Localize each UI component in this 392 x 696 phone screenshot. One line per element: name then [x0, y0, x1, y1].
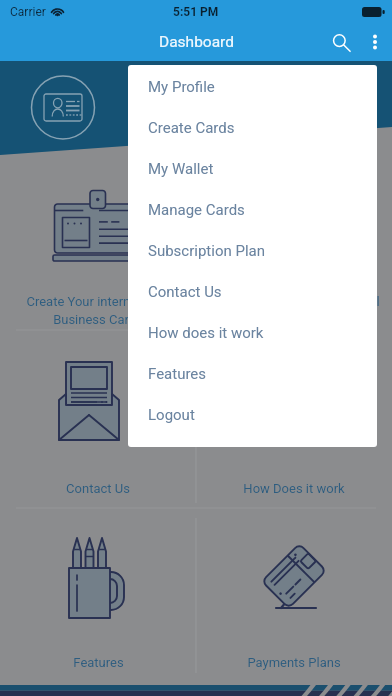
staticText: Create Your international Business Cards: [26, 294, 170, 327]
button[interactable]: How Does it work: [196, 478, 392, 498]
staticText: Payments Plans: [247, 655, 341, 670]
button[interactable]: Manage All Your Professional: [196, 294, 392, 330]
button[interactable]: Manage Cards: [128, 189, 377, 230]
staticText: My Profile: [148, 78, 215, 96]
button[interactable]: My Wallet: [128, 148, 377, 189]
button[interactable]: Payments Plans: [196, 652, 392, 672]
staticText: How does it work: [148, 324, 264, 342]
staticText: Logout: [148, 406, 195, 424]
button[interactable]: Search: [322, 24, 358, 60]
staticText: How Does it work: [243, 481, 345, 496]
button[interactable]: Contact Us: [128, 271, 377, 312]
button[interactable]: Features: [128, 353, 377, 394]
staticText: Carrier: [10, 5, 46, 19]
button[interactable]: Subscription Plan: [128, 230, 377, 271]
button[interactable]: How does it work: [128, 312, 377, 353]
staticText: My Wallet: [148, 160, 214, 178]
button[interactable]: Create Cards: [128, 107, 377, 148]
staticText: Create Cards: [148, 119, 235, 137]
staticText: Dashboard: [159, 33, 234, 51]
button[interactable]: Logout: [128, 394, 377, 435]
staticText: Contact Us: [148, 283, 222, 301]
staticText: Contact Us: [66, 481, 130, 496]
staticText: Manage Cards: [148, 201, 245, 219]
button[interactable]: Contact Us: [0, 478, 196, 498]
button[interactable]: Create Your international Business Cards: [0, 294, 196, 330]
button[interactable]: Features: [0, 652, 196, 672]
staticText: Features: [73, 655, 124, 670]
staticText: Manage All Your Professional: [209, 294, 380, 309]
staticText: Subscription Plan: [148, 242, 266, 260]
staticText: Features: [148, 365, 207, 383]
button[interactable]: My Profile: [128, 66, 377, 107]
staticText: 5:51 PM: [173, 5, 219, 19]
button[interactable]: More options: [358, 25, 392, 59]
